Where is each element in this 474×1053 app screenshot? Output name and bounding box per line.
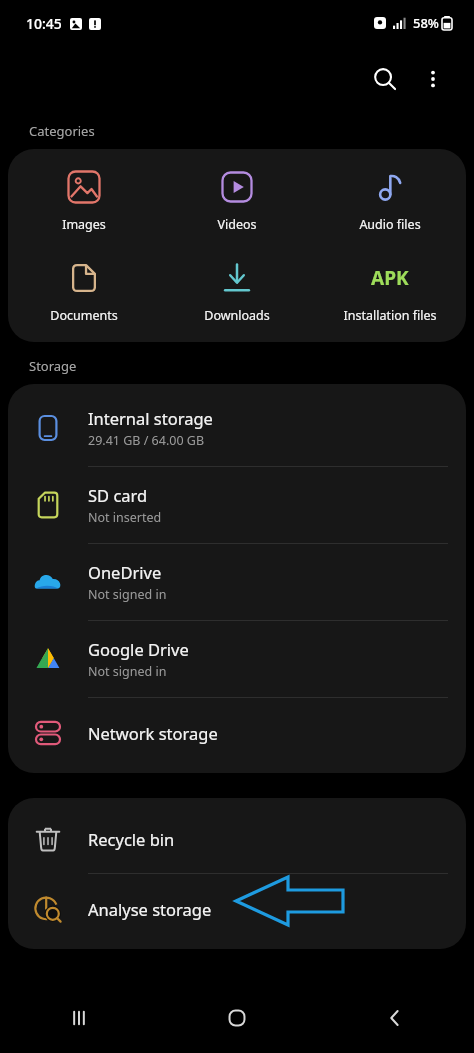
staticText: 10:45 <box>26 14 62 33</box>
staticText: 29.41 GB / 64.00 GB <box>88 432 205 449</box>
staticText: Recycle bin <box>88 828 175 850</box>
button[interactable]: Documents <box>8 252 160 330</box>
staticText: OneDrive <box>88 561 162 583</box>
staticText: Audio files <box>359 216 421 233</box>
staticText: Categories <box>29 122 95 140</box>
button[interactable]: Search <box>362 56 408 102</box>
button[interactable]: Audio files <box>313 161 466 239</box>
button[interactable]: OneDrive <box>8 544 466 620</box>
staticText: Google Drive <box>88 638 189 660</box>
staticText: 58% <box>413 14 439 32</box>
staticText: Not signed in <box>88 586 167 603</box>
staticText: Internal storage <box>88 407 213 429</box>
staticText: Images <box>62 216 106 233</box>
button[interactable]: SD card <box>8 467 466 543</box>
staticText: Storage <box>29 357 77 375</box>
button[interactable]: Home <box>158 983 316 1053</box>
button[interactable]: APK <box>313 252 466 330</box>
staticText: Not signed in <box>88 663 167 680</box>
staticText: Videos <box>217 216 257 233</box>
staticText: Installation files <box>343 307 437 324</box>
button[interactable]: More options <box>410 56 456 102</box>
button[interactable]: Videos <box>160 161 313 239</box>
staticText: Analyse storage <box>88 898 212 920</box>
button[interactable]: Internal storage <box>8 390 466 466</box>
button[interactable]: Images <box>8 161 160 239</box>
staticText: Network storage <box>88 722 218 744</box>
button[interactable]: Back <box>316 983 474 1053</box>
staticText: Documents <box>50 307 118 324</box>
button[interactable]: Recycle bin <box>8 804 466 873</box>
button[interactable]: Analyse storage <box>8 874 466 943</box>
button[interactable]: Google Drive <box>8 621 466 697</box>
staticText: APK <box>371 265 409 291</box>
button[interactable]: Downloads <box>160 252 313 330</box>
staticText: Downloads <box>204 307 270 324</box>
button[interactable]: Network storage <box>8 698 466 767</box>
staticText: SD card <box>88 484 148 506</box>
button[interactable]: Recents <box>0 983 158 1053</box>
staticText: Not inserted <box>88 509 162 526</box>
